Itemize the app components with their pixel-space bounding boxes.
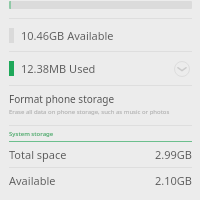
staticText: 2.99GB <box>155 147 192 162</box>
button[interactable]: 12.38MB Used <box>0 52 200 85</box>
staticText: 10.46GB Available <box>21 28 114 43</box>
staticText: 2.10GB <box>155 173 192 188</box>
staticText: Erase all data on phone storage, such as… <box>9 108 170 116</box>
button[interactable]: Available <box>0 168 200 193</box>
button[interactable]: Expand details <box>174 61 190 77</box>
staticText: Total space <box>9 147 67 162</box>
button[interactable]: Format phone storage <box>0 86 200 122</box>
button[interactable]: 10.46GB Available <box>0 19 200 51</box>
staticText: 12.38MB Used <box>21 61 96 76</box>
staticText: System storage <box>9 130 54 138</box>
staticText: Format phone storage <box>9 92 115 106</box>
staticText: Available <box>9 173 56 188</box>
button[interactable]: Total space <box>0 142 200 167</box>
